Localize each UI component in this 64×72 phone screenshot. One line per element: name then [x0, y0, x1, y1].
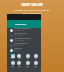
- button[interactable]: Album: [24, 60, 32, 70]
- staticText: Organize every photo and video you shoot…: [14, 9, 50, 15]
- button[interactable]: Album: [15, 53, 23, 63]
- button[interactable]: [7, 28, 41, 33]
- button[interactable]: [7, 43, 41, 48]
- button[interactable]: Album: [15, 60, 23, 70]
- button[interactable]: [7, 33, 41, 38]
- button[interactable]: Album: [32, 53, 40, 63]
- staticText: Collections: [15, 23, 27, 26]
- button[interactable]: [7, 38, 41, 43]
- button[interactable]: Album: [9, 60, 17, 70]
- button[interactable]: Collections: [7, 20, 41, 28]
- staticText: SMART GALLERY: [21, 3, 43, 7]
- button[interactable]: Album: [24, 53, 32, 63]
- button[interactable]: Album: [32, 60, 40, 70]
- button[interactable]: Album: [9, 53, 17, 63]
